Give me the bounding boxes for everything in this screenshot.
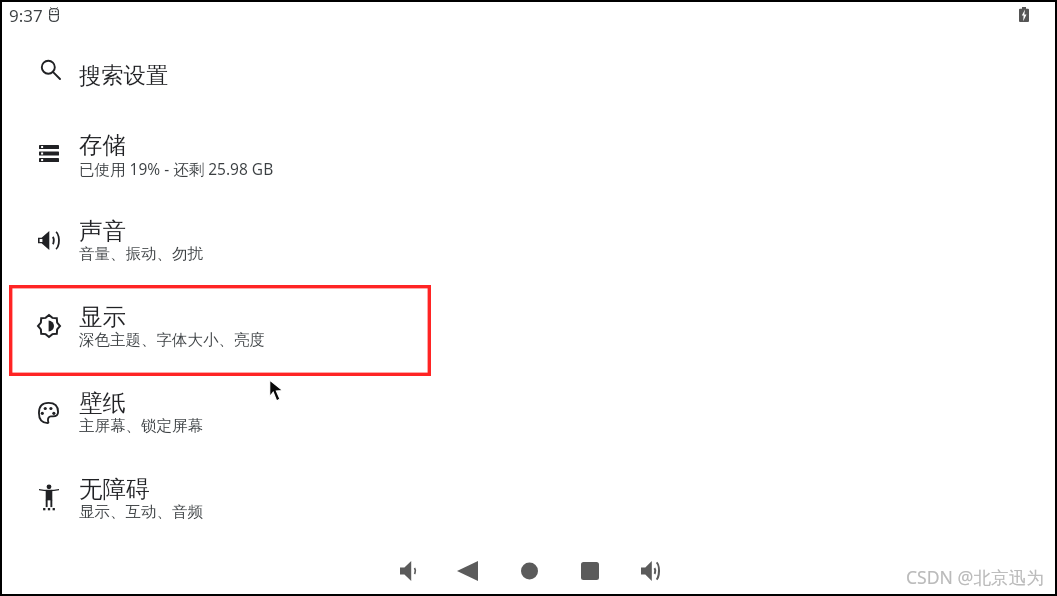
staticText: 存储 [79,130,126,160]
button[interactable]: Back [451,555,484,587]
button[interactable]: Home [515,556,544,586]
button[interactable]: 搜索设置 [0,40,1057,104]
button[interactable]: 无障碍 [0,457,1057,543]
staticText: 主屏幕、锁定屏幕 [79,416,203,436]
button[interactable]: Volume up [635,555,665,587]
staticText: 无障碍 [79,474,150,504]
staticText: 声音 [79,216,126,246]
button[interactable]: 声音 [0,199,1057,285]
staticText: 9:37 [9,4,43,27]
staticText: 显示 [79,302,126,332]
button[interactable]: 壁纸 [0,371,1057,457]
staticText: 壁纸 [79,388,126,418]
button[interactable]: Volume down [394,555,423,587]
staticText: 已使用 19% - 还剩 25.98 GB [79,158,274,179]
staticText: 深色主题、字体大小、亮度 [79,330,265,350]
staticText: 搜索设置 [79,62,169,90]
button[interactable]: 存储 [0,113,1057,199]
staticText: 音量、振动、勿扰 [79,244,203,264]
button[interactable]: 显示 [0,285,1057,371]
staticText: CSDN @北京迅为 [906,565,1044,589]
button[interactable]: Recents [575,556,605,586]
staticText: 显示、互动、音频 [79,502,203,522]
